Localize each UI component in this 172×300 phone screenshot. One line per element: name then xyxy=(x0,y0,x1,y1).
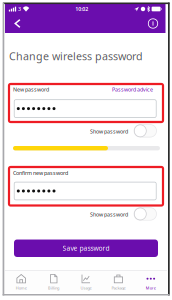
staticText: Show password xyxy=(90,211,128,218)
button[interactable]: More xyxy=(135,271,167,293)
button[interactable]: Usage xyxy=(70,271,102,293)
staticText: Billing xyxy=(48,285,59,290)
staticText: Save password xyxy=(62,244,109,253)
button[interactable]: Save password xyxy=(14,239,158,257)
button[interactable]: Password advice xyxy=(112,86,153,93)
button[interactable]: Package xyxy=(102,271,135,293)
staticText: Package xyxy=(111,285,125,290)
button[interactable]: Information xyxy=(143,14,162,33)
staticText: Confirm new password xyxy=(13,169,68,177)
button[interactable]: Show password xyxy=(134,125,156,137)
staticText: Usage xyxy=(80,285,91,290)
button[interactable]: Show password xyxy=(134,208,156,220)
button[interactable]: Back xyxy=(8,14,27,33)
staticText: More xyxy=(146,285,156,290)
staticText: 3 xyxy=(18,5,21,13)
button[interactable]: Home xyxy=(5,271,37,293)
staticText: New password xyxy=(13,86,49,93)
button[interactable]: Billing xyxy=(37,271,70,293)
staticText: Password advice xyxy=(112,86,153,93)
staticText: Home xyxy=(16,285,27,290)
staticText: Change wireless password xyxy=(9,49,143,63)
staticText: Show password xyxy=(90,128,128,135)
staticText: 10:02 xyxy=(75,5,88,13)
